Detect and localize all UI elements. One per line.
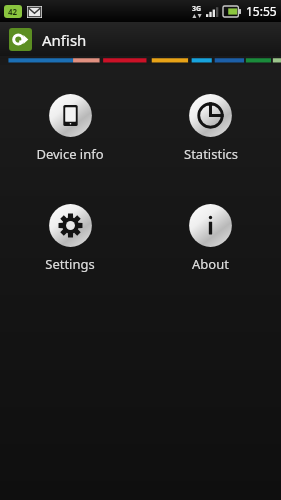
other: Anfish logo [9,28,32,51]
staticText: 42 [8,6,18,17]
button[interactable]: Device info [0,89,140,166]
button[interactable]: About [140,199,281,276]
staticText: Settings [45,255,95,273]
staticText: 3G [192,4,202,14]
staticText: Anfish [42,30,87,50]
staticText: Device info [36,145,104,163]
button[interactable]: Settings [0,199,140,276]
staticText: About [192,255,229,273]
staticText: Statistics [184,145,238,163]
button[interactable]: Statistics [140,89,281,166]
button[interactable]: Anfish logo [0,22,281,56]
staticText: 15:55 [246,3,277,19]
